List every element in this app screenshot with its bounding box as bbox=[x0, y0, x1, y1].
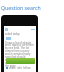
button[interactable]: Ask question bbox=[6, 58, 35, 64]
staticText: I have a list of objects and I want to s… bbox=[5, 41, 34, 68]
staticText: Question search bbox=[1, 4, 41, 11]
staticText: asked today bbox=[5, 32, 20, 36]
staticText: share edit follow bbox=[9, 66, 31, 70]
